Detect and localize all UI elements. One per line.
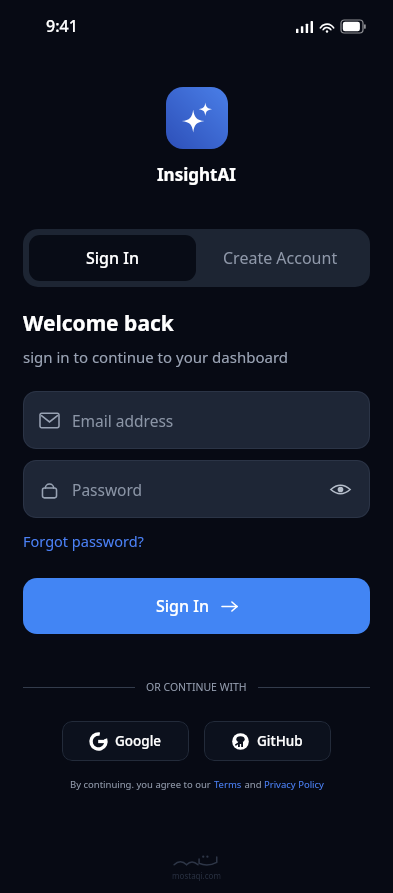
staticText: GitHub — [257, 732, 303, 750]
button[interactable]: Email address — [23, 391, 370, 449]
staticText: Sign In — [86, 247, 139, 269]
staticText: By continuing. you agree to our — [70, 778, 214, 791]
staticText: InsightAI — [157, 163, 236, 186]
staticText: OR CONTINUE WITH — [146, 680, 247, 694]
staticText: Google — [115, 732, 162, 750]
staticText: sign in to continue to your dashboard — [23, 347, 289, 367]
staticText: Welcome back — [23, 309, 174, 338]
staticText: Forgot password? — [23, 531, 144, 551]
button[interactable]: Sign In — [23, 578, 370, 634]
button[interactable]: Google — [62, 721, 189, 761]
button[interactable]: Privacy Policy — [264, 778, 324, 791]
button[interactable]: Create Account — [196, 235, 364, 281]
staticText: Email address — [72, 410, 353, 431]
button[interactable]: Password — [23, 460, 370, 518]
button[interactable]: Sign In — [29, 235, 196, 281]
staticText: Sign In — [156, 595, 209, 617]
staticText: 9:41 — [46, 15, 78, 37]
button[interactable]: Forgot password? — [23, 531, 144, 551]
staticText: Terms — [214, 778, 242, 791]
staticText: Password — [72, 479, 327, 500]
button[interactable]: Terms — [214, 778, 242, 791]
button[interactable]: Show password — [327, 476, 353, 502]
staticText: mostaqi.com — [172, 870, 221, 881]
staticText: and — [242, 778, 264, 791]
button[interactable]: GitHub — [204, 721, 331, 761]
staticText: Privacy Policy — [264, 778, 324, 791]
staticText: Create Account — [223, 247, 338, 269]
